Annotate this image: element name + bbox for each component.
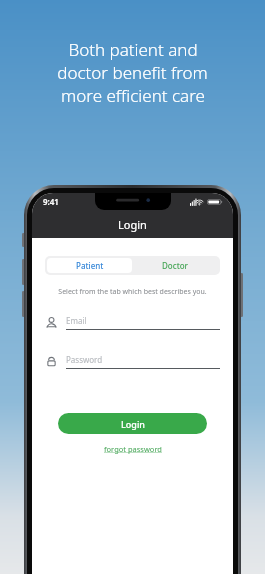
staticText: 9:41	[43, 196, 59, 207]
staticText: Login	[118, 217, 147, 232]
button[interactable]: Password	[45, 354, 220, 369]
staticText: Select from the tab which best describes…	[42, 287, 223, 297]
staticText: Doctor	[162, 260, 188, 271]
staticText: Login	[121, 418, 145, 430]
staticText: more efficient care	[61, 84, 205, 107]
staticText: Password	[66, 354, 103, 365]
button[interactable]: Email	[45, 315, 220, 330]
button[interactable]: Patient	[47, 258, 132, 273]
button[interactable]: forgot password	[100, 443, 166, 455]
button[interactable]: Login	[58, 413, 207, 434]
staticText: doctor benefit from	[57, 61, 208, 84]
staticText: Both patient and	[68, 38, 198, 61]
button[interactable]: Doctor	[132, 258, 218, 273]
staticText: Patient	[76, 260, 104, 271]
staticText: Email	[66, 315, 87, 326]
